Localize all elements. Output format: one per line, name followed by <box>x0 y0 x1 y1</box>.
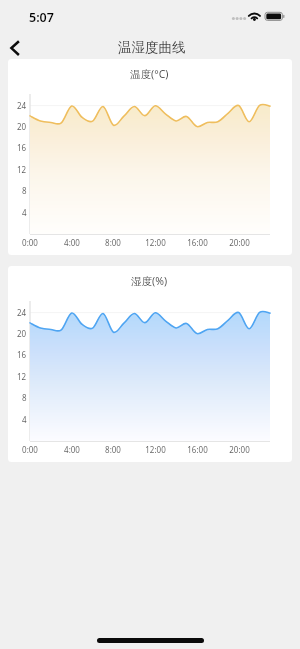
staticText: 16:00 <box>187 444 208 455</box>
staticText: 4:00 <box>64 444 80 455</box>
staticText: 16:00 <box>187 237 208 248</box>
staticText: 0:00 <box>22 237 38 248</box>
staticText: 24 <box>17 307 27 318</box>
staticText: 8:00 <box>105 444 121 455</box>
staticText: 16 <box>17 349 27 360</box>
staticText: 20:00 <box>229 237 250 248</box>
staticText: 20 <box>17 121 27 132</box>
staticText: 8 <box>22 392 27 403</box>
staticText: 4:00 <box>64 237 80 248</box>
staticText: 温湿度曲线 <box>118 39 186 56</box>
staticText: 24 <box>17 100 27 111</box>
staticText: 8 <box>22 185 27 196</box>
staticText: 4 <box>22 414 27 425</box>
staticText: 4 <box>22 207 27 218</box>
staticText: 12:00 <box>145 444 166 455</box>
staticText: 12 <box>17 371 27 382</box>
staticText: 20 <box>17 328 27 339</box>
staticText: 16 <box>17 142 27 153</box>
staticText: 12:00 <box>145 237 166 248</box>
button[interactable]: Back <box>0 30 30 58</box>
staticText: 5:07 <box>29 9 54 26</box>
staticText: 温度(°C) <box>130 67 169 81</box>
staticText: 湿度(%) <box>131 274 168 288</box>
staticText: 20:00 <box>229 444 250 455</box>
staticText: 0:00 <box>22 444 38 455</box>
staticText: 12 <box>17 164 27 175</box>
staticText: 8:00 <box>105 237 121 248</box>
